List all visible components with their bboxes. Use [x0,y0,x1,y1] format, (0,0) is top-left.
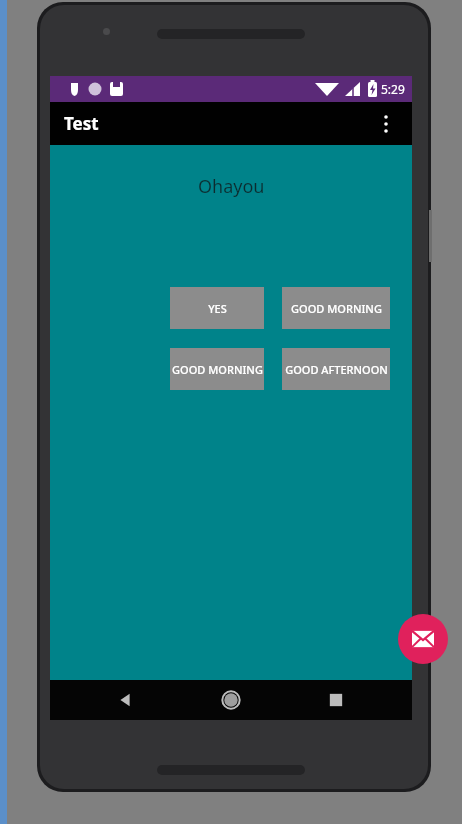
button[interactable]: YES [170,287,264,329]
staticText: YES [208,301,227,316]
staticText: Ohayou [198,174,265,199]
button[interactable]: Send email [398,614,448,664]
button[interactable]: Recent apps [322,686,350,714]
staticText: GOOD MORNING [172,362,263,377]
button[interactable]: Back [112,686,140,714]
button[interactable]: Home [217,686,245,714]
staticText: 5:29 [381,81,405,97]
button[interactable]: GOOD MORNING [282,287,390,329]
staticText: GOOD AFTERNOON [285,362,388,377]
button[interactable]: GOOD MORNING [170,348,264,390]
button[interactable]: GOOD AFTERNOON [282,348,390,390]
staticText: Test [64,112,99,135]
staticText: GOOD MORNING [291,301,382,316]
button[interactable]: More options [366,104,406,144]
